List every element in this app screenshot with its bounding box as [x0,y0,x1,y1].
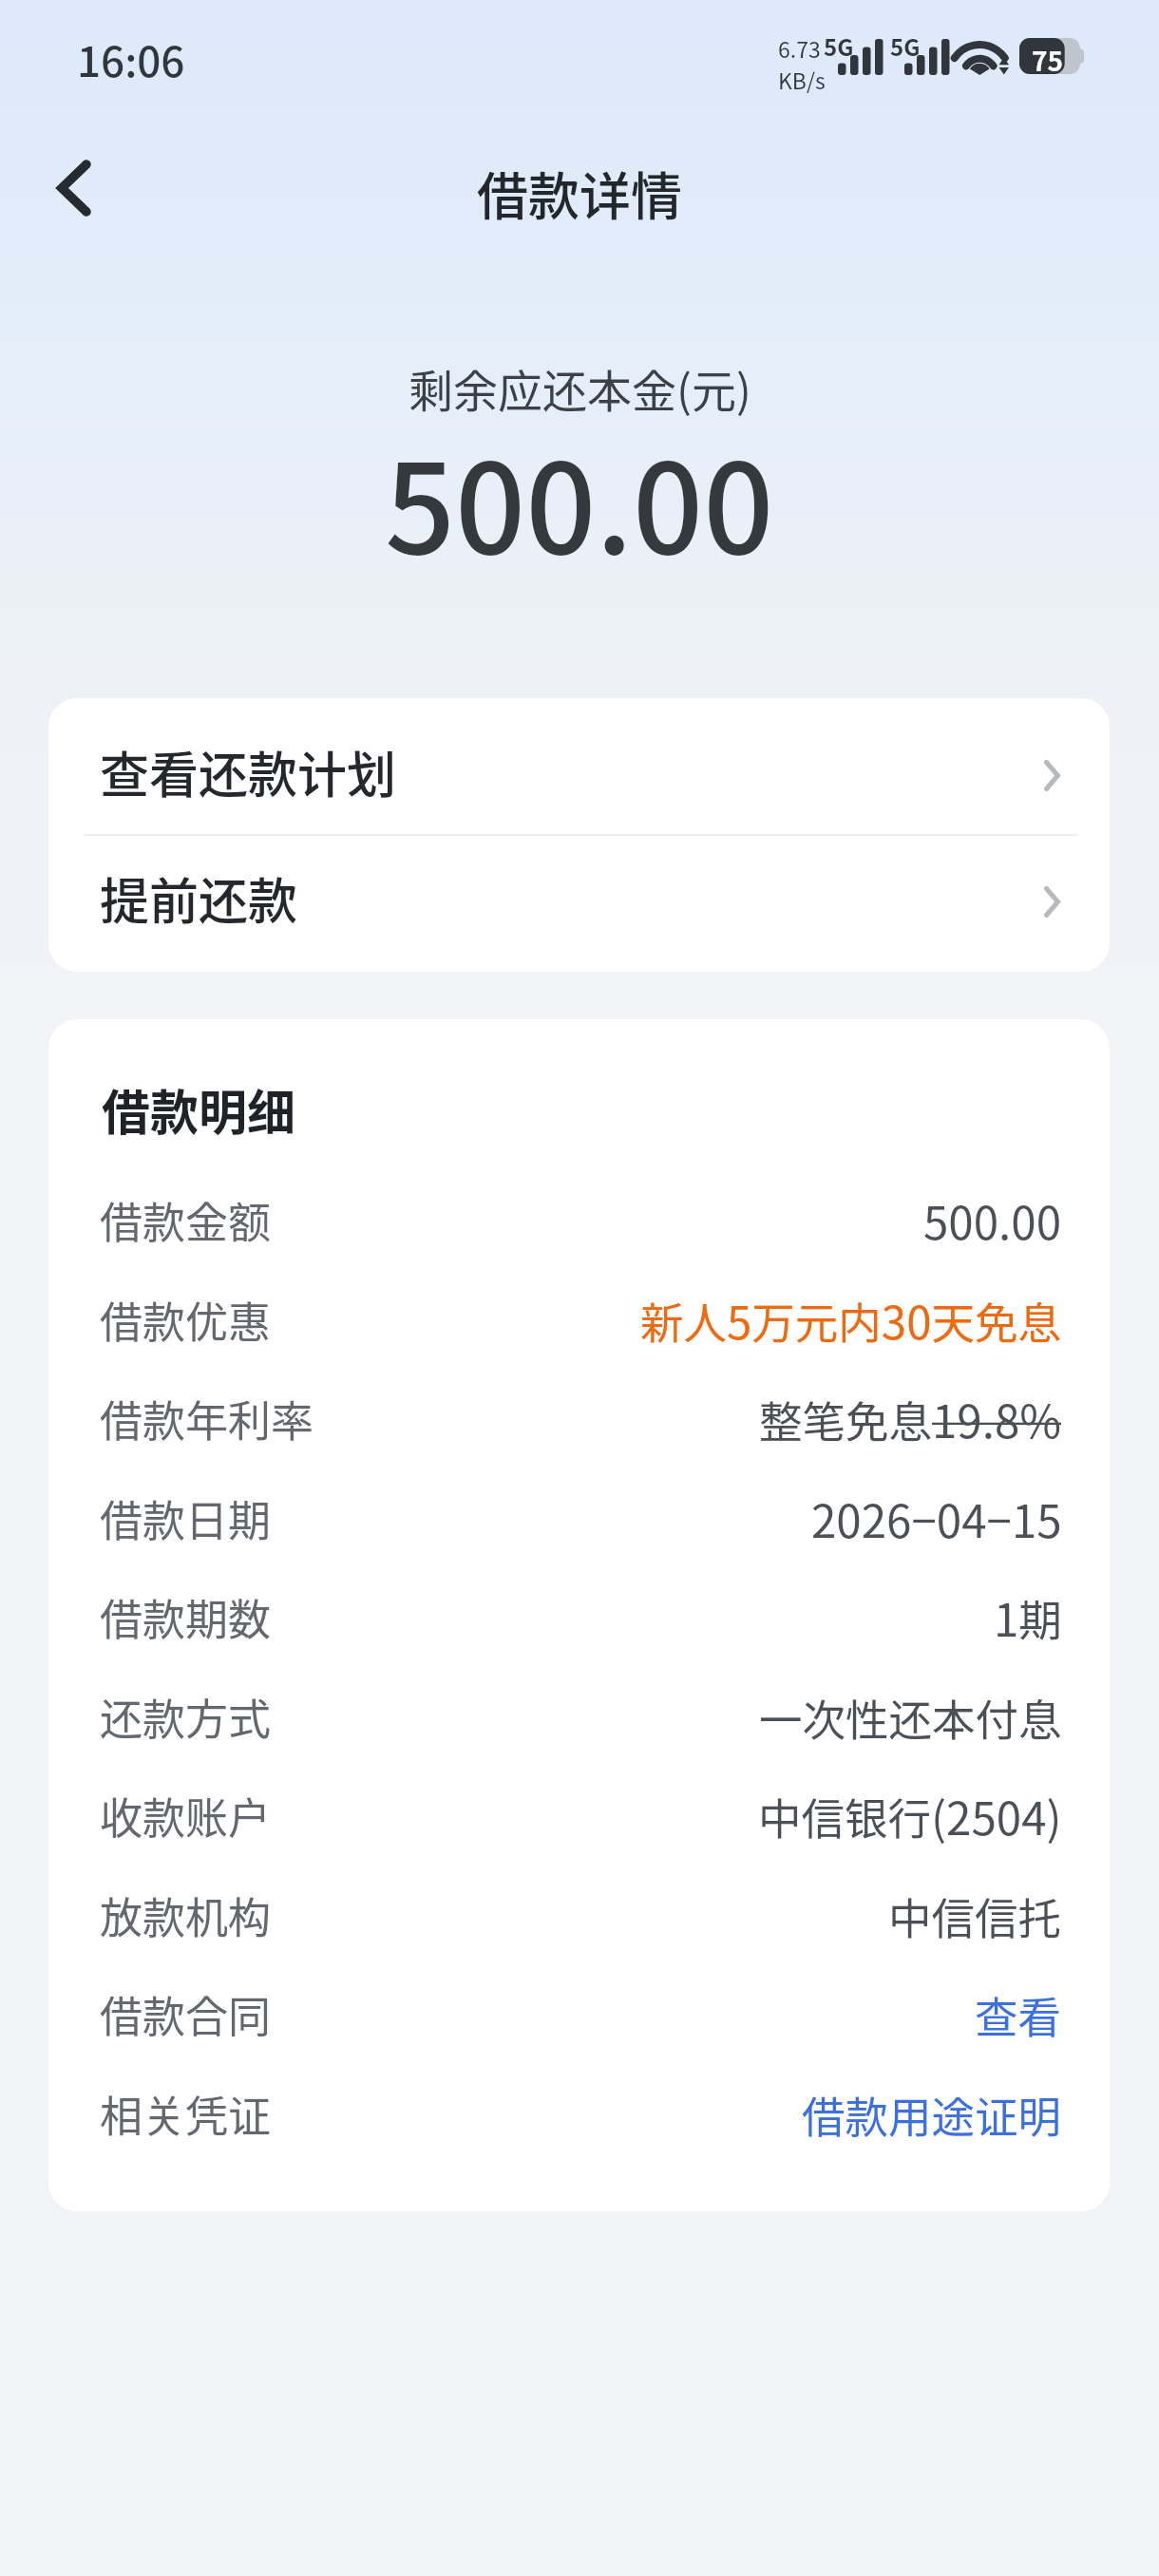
staticText: 借款详情 [477,156,682,230]
staticText: 借款用途证明 [802,2083,1062,2146]
staticText: 500.00 [385,410,774,589]
staticText: 借款金额 [100,1189,272,1251]
staticText: 75 [1032,41,1064,77]
staticText: 5G [890,29,921,63]
staticText: 新人5万元内30天免息 [640,1287,1062,1353]
button[interactable]: 查看 [975,1983,1062,2046]
staticText: 查看还款计划 [100,736,397,807]
staticText: 中信银行(2504) [758,1783,1062,1848]
staticText: 借款日期 [100,1487,272,1549]
button[interactable]: Back [17,131,131,245]
button[interactable]: 提前还款 [48,836,1110,960]
staticText: 借款期数 [100,1586,272,1648]
staticText: 还款方式 [100,1686,272,1748]
other: Wi-Fi [961,37,1009,75]
button[interactable]: 查看还款计划 [48,710,1110,834]
staticText: 500.00 [923,1187,1062,1253]
staticText: 相关凭证 [100,2083,272,2145]
staticText: 整笔免息19.8% [759,1386,1062,1451]
staticText: 收款账户 [100,1785,272,1847]
staticText: 提前还款 [100,862,298,934]
staticText: 2026−04−15 [811,1486,1062,1551]
staticText: 借款年利率 [100,1388,314,1449]
staticText: 查看 [975,1983,1062,2046]
staticText: 5G [824,29,854,63]
staticText: 中信信托 [888,1885,1062,1947]
staticText: 一次性还本付息 [759,1686,1062,1749]
staticText: 借款明细 [102,1074,296,1145]
staticText: 1期 [994,1584,1062,1650]
staticText: KB/s [778,64,826,95]
staticText: 16:06 [77,28,185,89]
staticText: 6.73 [778,32,821,64]
staticText: 放款机构 [100,1885,272,1946]
staticText: 借款优惠 [100,1289,272,1351]
staticText: 借款合同 [100,1983,272,2045]
button[interactable]: 借款用途证明 [802,2083,1062,2146]
staticText: 剩余应还本金(元) [408,355,751,420]
